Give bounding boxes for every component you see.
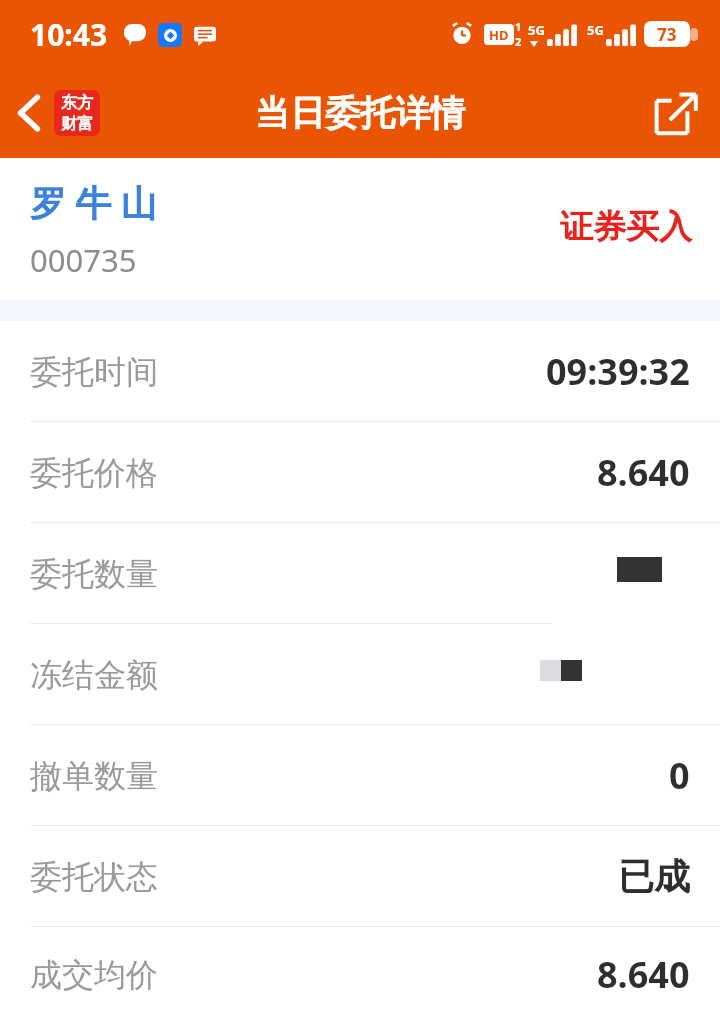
staticText: 2 bbox=[515, 34, 522, 49]
staticText: 09:39:32 bbox=[546, 347, 690, 396]
staticText: 8.640 bbox=[597, 950, 690, 999]
staticText: 73 bbox=[657, 23, 677, 46]
staticText: 5G bbox=[587, 21, 604, 39]
button[interactable]: 冻结金额 bbox=[0, 624, 720, 725]
staticText: 冻结金额 bbox=[30, 655, 158, 695]
staticText: 0 bbox=[669, 751, 690, 800]
staticText: 罗 牛 山 bbox=[30, 178, 157, 227]
button[interactable]: 委托数量 bbox=[0, 523, 720, 624]
staticText: 成交均价 bbox=[30, 955, 158, 995]
staticText: 10:43 bbox=[30, 14, 108, 55]
button[interactable]: 撤单数量 bbox=[0, 725, 720, 826]
staticText: 已成 bbox=[618, 854, 690, 899]
button[interactable]: 委托状态 bbox=[0, 826, 720, 927]
staticText: 委托时间 bbox=[30, 352, 158, 392]
staticText: 000735 bbox=[30, 239, 137, 281]
button[interactable]: Back bbox=[0, 80, 114, 146]
staticText: 证券买入 bbox=[560, 206, 692, 248]
staticText: 8.640 bbox=[597, 448, 690, 497]
button[interactable]: 委托时间 bbox=[0, 321, 720, 422]
staticText: 当日委托详情 bbox=[255, 91, 465, 135]
staticText: HD bbox=[489, 26, 509, 44]
staticText: 委托价格 bbox=[30, 453, 158, 493]
staticText: 委托数量 bbox=[30, 554, 158, 594]
button[interactable]: Share bbox=[632, 79, 720, 147]
staticText: 1 bbox=[515, 19, 522, 34]
staticText: 东方 bbox=[61, 93, 93, 113]
button[interactable]: 委托价格 bbox=[0, 422, 720, 523]
staticText: 5G bbox=[528, 21, 545, 39]
staticText: 财富 bbox=[61, 114, 93, 134]
staticText: 委托状态 bbox=[30, 857, 158, 897]
staticText: 撤单数量 bbox=[30, 756, 158, 796]
button[interactable]: 成交均价 bbox=[0, 927, 720, 1022]
